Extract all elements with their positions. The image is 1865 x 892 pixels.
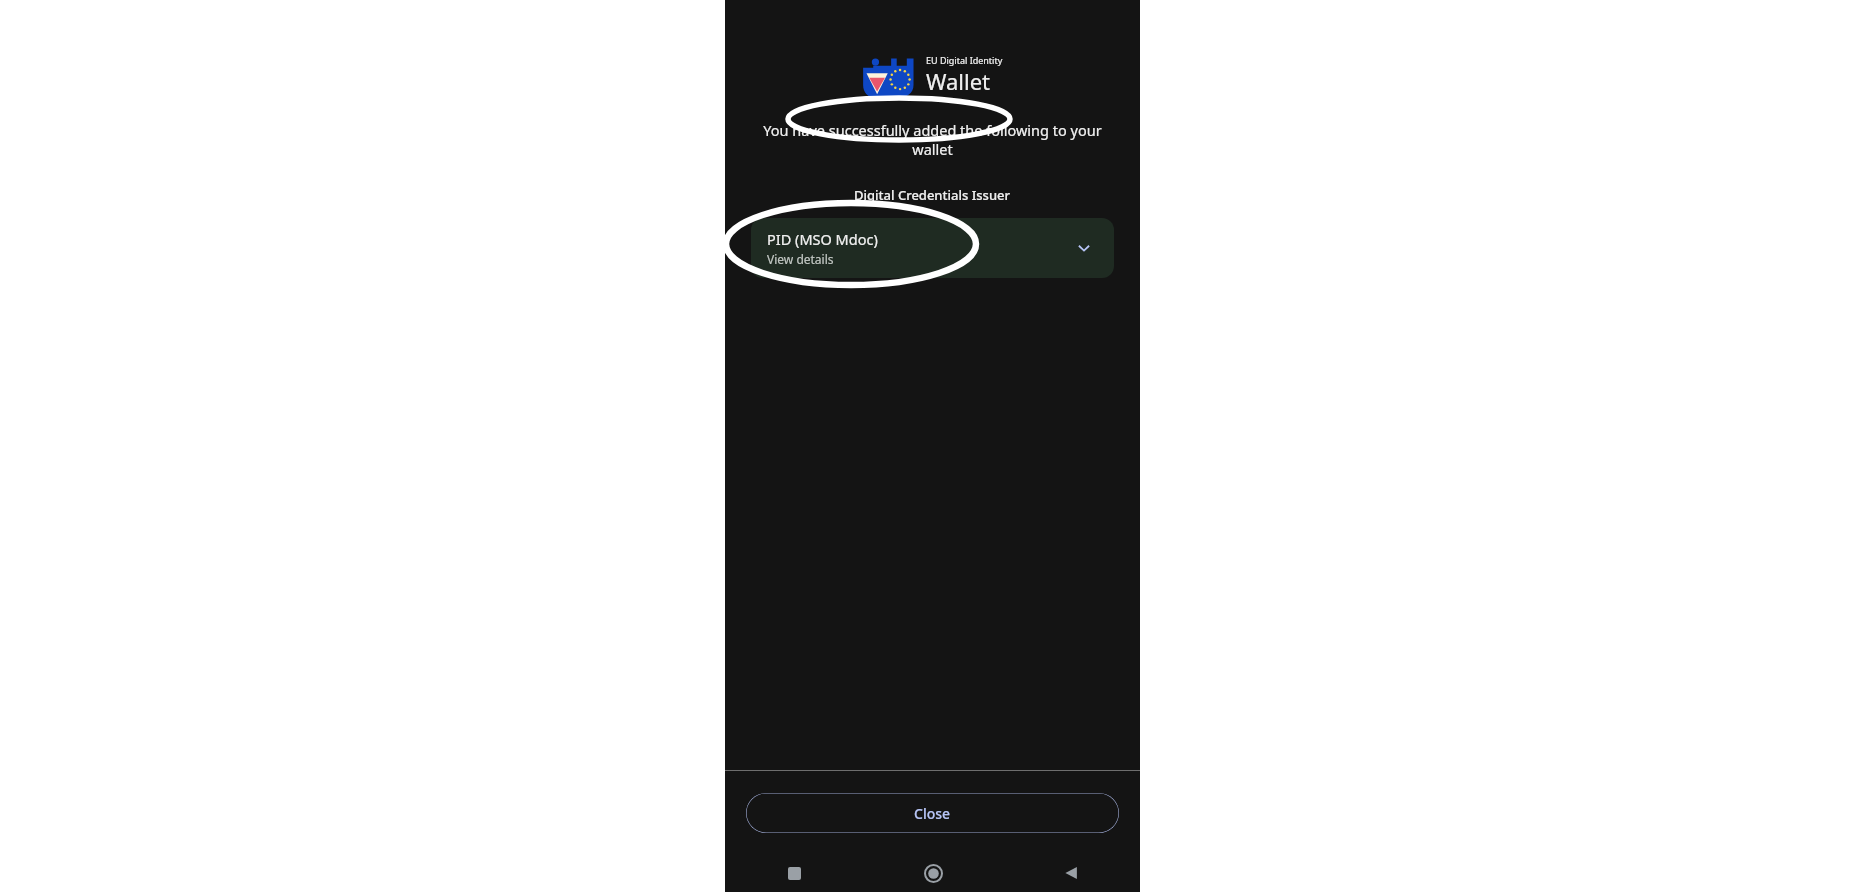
button[interactable]: PID (MSO Mdoc) bbox=[751, 218, 1114, 278]
staticText: You have successfully added the followin… bbox=[745, 120, 1120, 160]
button[interactable]: Home bbox=[864, 854, 1002, 892]
other: Expand details bbox=[1070, 234, 1098, 262]
staticText: PID (MSO Mdoc) bbox=[767, 229, 878, 249]
button[interactable]: Close bbox=[746, 793, 1119, 833]
staticText: Wallet bbox=[926, 66, 991, 96]
button[interactable]: Recent apps bbox=[725, 854, 864, 892]
staticText: Close bbox=[914, 804, 951, 823]
staticText: EU Digital Identity bbox=[926, 54, 1003, 66]
staticText: View details bbox=[767, 251, 834, 267]
staticText: Digital Credentials Issuer bbox=[854, 186, 1011, 204]
button[interactable]: Back bbox=[1002, 854, 1140, 892]
